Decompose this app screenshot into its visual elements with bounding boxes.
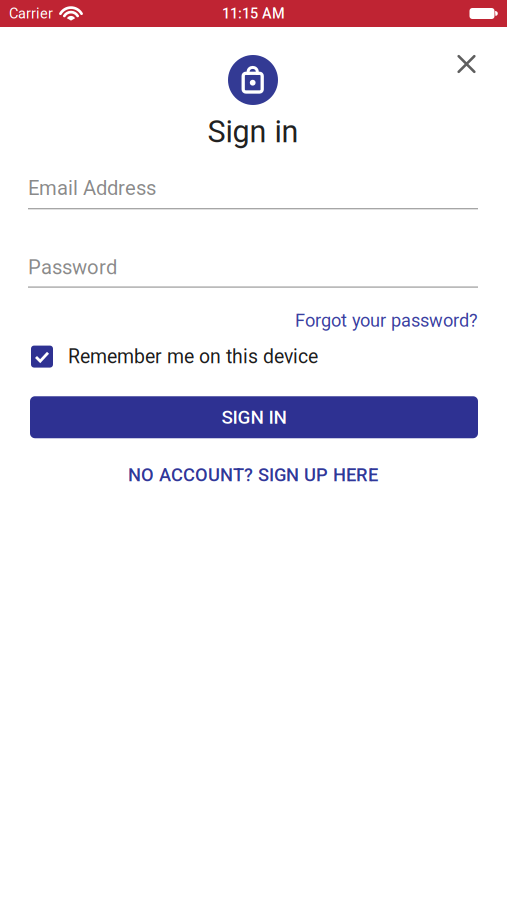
staticText: Forgot your password?	[295, 310, 478, 331]
staticText: Carrier	[9, 5, 53, 22]
staticText: NO ACCOUNT? SIGN UP HERE	[128, 464, 378, 486]
staticText: Remember me on this device	[68, 345, 318, 368]
button[interactable]: SIGN IN	[30, 396, 478, 438]
button[interactable]: Remember me on this device	[31, 346, 53, 368]
staticText: Password	[28, 255, 117, 279]
button[interactable]: Close	[447, 45, 485, 83]
staticText: Email Address	[28, 176, 156, 200]
staticText: Sign in	[207, 114, 298, 150]
staticText: SIGN IN	[221, 406, 286, 428]
button[interactable]: Forgot your password?	[295, 310, 478, 331]
staticText: 11:15 AM	[222, 5, 285, 22]
button[interactable]: NO ACCOUNT? SIGN UP HERE	[128, 464, 378, 486]
